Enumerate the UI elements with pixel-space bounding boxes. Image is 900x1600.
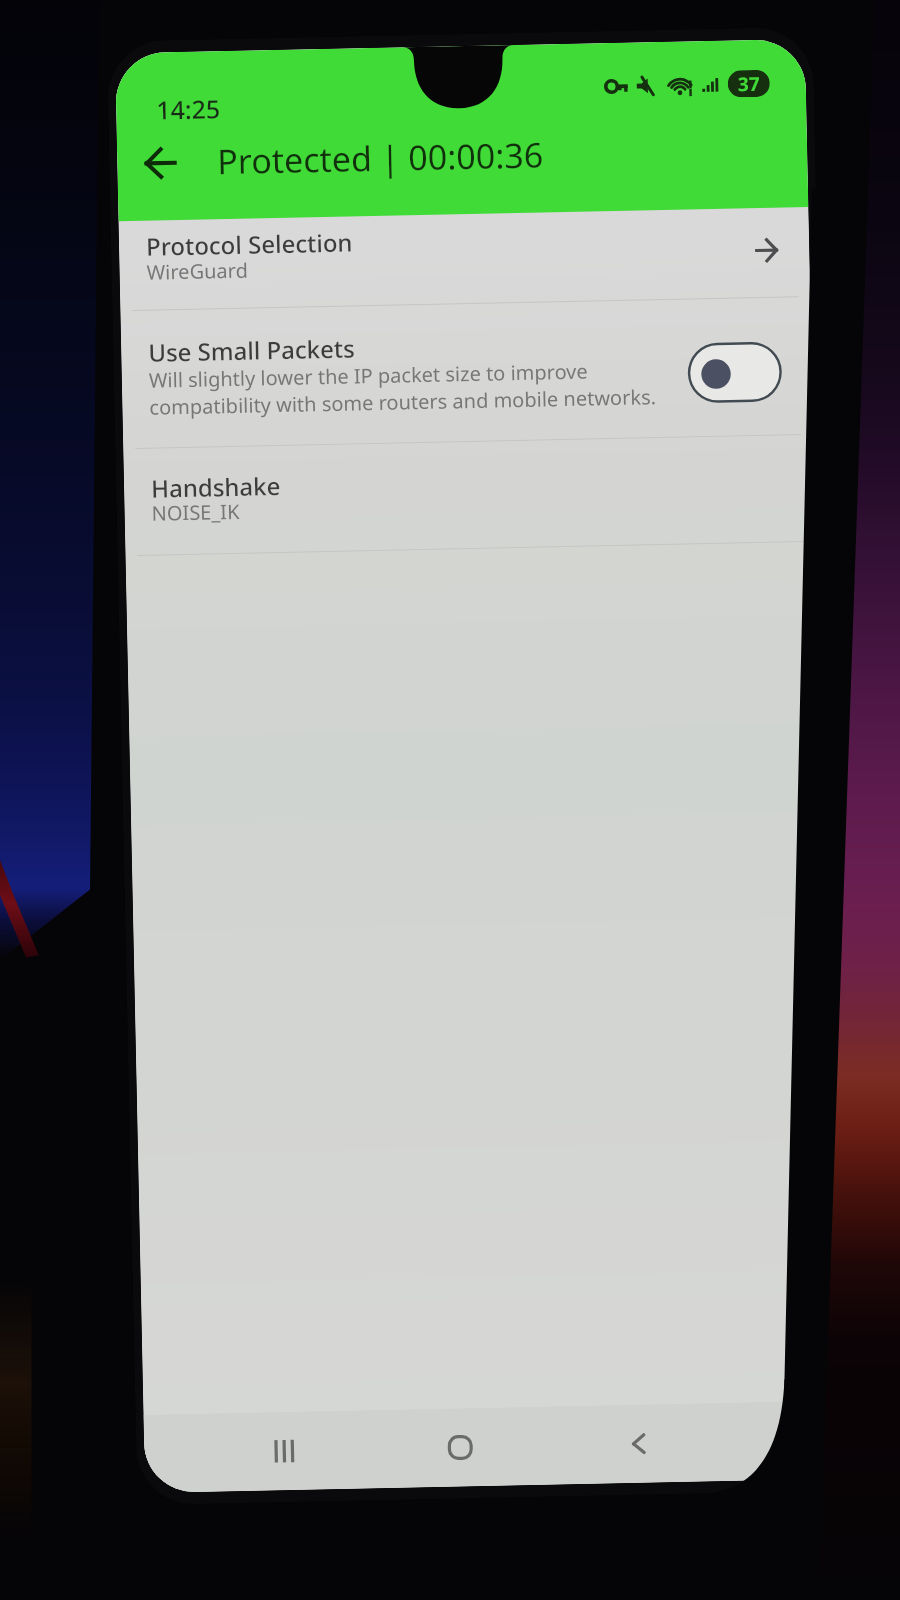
button[interactable]: Home (419, 1408, 501, 1487)
staticText: Protected | 00:00:36 (217, 131, 544, 184)
button[interactable]: Handshake (123, 435, 815, 555)
button[interactable]: Back (598, 1404, 680, 1484)
staticText: Will slightly lower the IP packet size t… (149, 356, 657, 421)
staticText: Use Small Packets (148, 331, 355, 369)
staticText: Protocol Selection (146, 225, 353, 263)
button[interactable]: Back (131, 133, 190, 192)
button[interactable]: Recent apps (243, 1411, 325, 1491)
button[interactable]: Protocol Selection (118, 196, 810, 310)
button[interactable]: Use small packets toggle (687, 341, 782, 403)
staticText: 37 (737, 71, 760, 97)
staticText: NOISE_IK (151, 498, 240, 527)
staticText: WireGuard (146, 257, 249, 286)
button[interactable]: Use Small Packets (120, 297, 813, 448)
staticText: 14:25 (156, 91, 221, 127)
staticText: Handshake (151, 469, 281, 505)
